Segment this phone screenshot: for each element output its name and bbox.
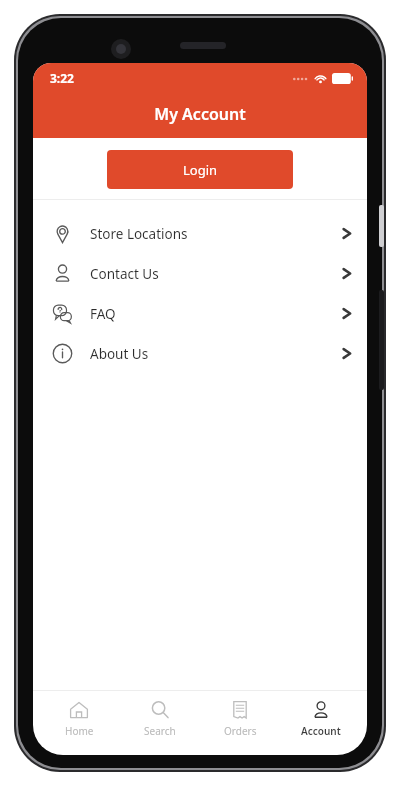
button[interactable]: FAQ (33, 293, 367, 333)
staticText: Contact Us (90, 265, 159, 283)
staticText: About Us (90, 345, 149, 363)
staticText: Store Locations (90, 225, 188, 243)
staticText: My Account (33, 103, 367, 125)
button[interactable]: Account (286, 696, 356, 742)
staticText: Login (183, 161, 218, 179)
staticText: Search (144, 724, 176, 738)
staticText: FAQ (90, 305, 116, 323)
button[interactable]: Orders (205, 696, 275, 742)
staticText: Account (301, 724, 341, 738)
staticText: 3:22 (50, 70, 74, 86)
staticText: Orders (224, 724, 257, 738)
button[interactable]: Search (125, 696, 195, 742)
button[interactable]: Contact Us (33, 253, 367, 293)
button[interactable]: Home (44, 696, 114, 742)
button[interactable]: Login (107, 150, 293, 189)
button[interactable]: Store Locations (33, 213, 367, 253)
button[interactable]: About Us (33, 333, 367, 373)
staticText: Home (65, 724, 94, 738)
